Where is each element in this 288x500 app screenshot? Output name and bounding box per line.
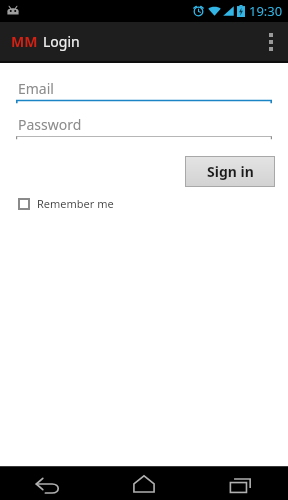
button[interactable]: Recent apps bbox=[192, 467, 288, 500]
staticText: Email bbox=[18, 79, 54, 98]
staticText: Password bbox=[18, 115, 82, 134]
button[interactable]: Sign in bbox=[185, 156, 275, 187]
staticText: 19:30 bbox=[249, 2, 283, 20]
button[interactable]: More options bbox=[254, 22, 288, 61]
staticText: Sign in bbox=[207, 162, 254, 181]
button[interactable]: Home bbox=[96, 467, 192, 500]
staticText: Login bbox=[43, 32, 80, 51]
button[interactable]: Remember me bbox=[16, 193, 116, 214]
staticText: Remember me bbox=[37, 196, 114, 211]
button[interactable]: Back bbox=[0, 467, 96, 500]
button[interactable]: Password bbox=[16, 113, 272, 140]
staticText: MM bbox=[11, 32, 38, 51]
button[interactable]: Email bbox=[16, 77, 272, 104]
